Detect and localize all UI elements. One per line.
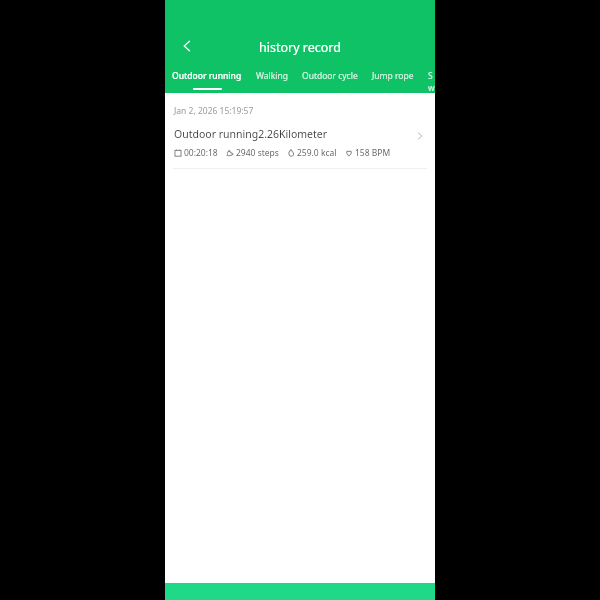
button[interactable]: Back	[169, 28, 205, 64]
staticText: Walking	[256, 70, 288, 82]
staticText: 2940 steps	[236, 147, 279, 159]
other: Open detail	[409, 125, 431, 147]
staticText: Jan 2, 2026 15:19:57	[174, 105, 254, 117]
button[interactable]: Swi	[428, 70, 435, 112]
button[interactable]: Jump rope	[372, 70, 414, 88]
staticText: Outdoor running	[172, 70, 242, 82]
staticText: 00:20:18	[184, 147, 218, 159]
staticText: Outdoor cycle	[302, 70, 358, 82]
button[interactable]: Outdoor cycle	[302, 70, 358, 88]
staticText: history record	[259, 39, 341, 56]
staticText: 259.0 kcal	[297, 147, 337, 159]
staticText: 158 BPM	[355, 147, 391, 159]
staticText: Swi	[428, 70, 435, 106]
button[interactable]: Outdoor running2.26Kilometer	[165, 117, 435, 169]
staticText: Outdoor running2.26Kilometer	[174, 127, 328, 141]
button[interactable]: Walking	[256, 70, 288, 88]
button[interactable]: Outdoor running	[172, 70, 242, 90]
staticText: Jump rope	[372, 70, 414, 82]
